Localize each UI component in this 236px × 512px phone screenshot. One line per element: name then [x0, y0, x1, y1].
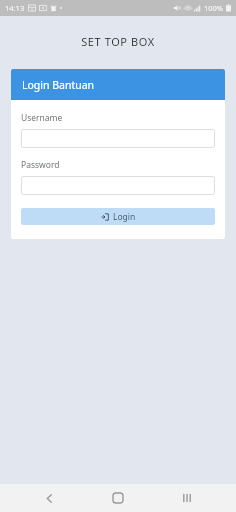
button[interactable] — [21, 176, 215, 195]
button[interactable]: Login Bantuan — [11, 69, 225, 100]
staticText: Username — [21, 112, 63, 124]
button[interactable]: Back — [29, 484, 69, 512]
staticText: 14:13 — [5, 3, 25, 13]
button[interactable]: Home — [98, 484, 138, 512]
button[interactable] — [21, 129, 215, 148]
staticText: 100% — [204, 3, 224, 13]
button[interactable]: Recents — [167, 484, 207, 512]
staticText: Password — [21, 159, 60, 171]
staticText: Login — [113, 211, 136, 223]
button[interactable]: Login — [21, 208, 215, 225]
staticText: SET TOP BOX — [81, 34, 155, 49]
other: Login — [101, 213, 109, 221]
staticText: Login Bantuan — [22, 78, 95, 92]
